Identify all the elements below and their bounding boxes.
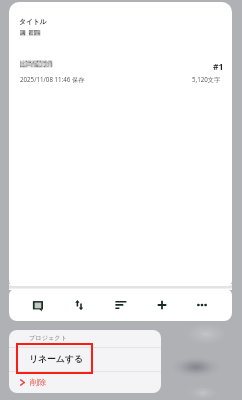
staticText: プロジェクト [29, 334, 67, 342]
button[interactable]: More options [188, 291, 216, 319]
staticText: 2025/11/08 11:46 保存 [20, 75, 85, 83]
button[interactable]: Sort [65, 291, 93, 319]
staticText: 5,120文字 [192, 75, 221, 83]
button[interactable]: Outline [107, 291, 135, 319]
button[interactable]: Add [148, 291, 176, 319]
staticText: リネームする [29, 354, 83, 365]
staticText: タイトル [19, 17, 47, 26]
button[interactable]: 削除 [9, 371, 161, 393]
button[interactable]: リネームする [9, 347, 161, 371]
staticText: #1 [213, 61, 224, 73]
staticText: 削除 [30, 377, 47, 387]
button[interactable]: Comment [24, 291, 52, 319]
